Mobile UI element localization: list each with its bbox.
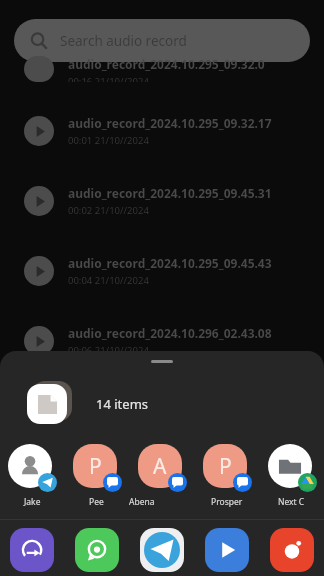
button[interactable]: audio_record_2024.10.296_02.43.08 — [0, 306, 324, 376]
button[interactable]: WhatsApp — [64, 520, 129, 576]
staticText: audio_record_2024.10.295_09.45.43 — [68, 255, 272, 271]
staticText: A — [153, 452, 167, 481]
staticText: Pee — [89, 496, 104, 508]
button[interactable]: 14 items — [0, 369, 324, 439]
staticText: audio_record_2024.10.295_09.32.0 — [68, 56, 265, 72]
staticText: audio_record_2024.10.296_02.43.08 — [68, 325, 272, 341]
button[interactable]: Search audio record — [14, 19, 310, 62]
button[interactable]: audio_record_2024.10.295_09.45.43 — [0, 236, 324, 306]
staticText: Abena Queenstar — [129, 496, 194, 508]
button[interactable]: P — [64, 439, 129, 519]
button[interactable]: Next C — [259, 439, 324, 519]
staticText: 00:16 21/10//2024 — [68, 75, 149, 82]
button[interactable]: P — [194, 439, 259, 519]
button[interactable]: Nearby Share — [0, 520, 64, 576]
button[interactable]: Jake — [0, 439, 64, 519]
button[interactable]: Reddit — [259, 520, 324, 576]
button[interactable]: A — [129, 439, 194, 519]
button[interactable]: Telegram — [129, 520, 194, 576]
staticText: 14 items — [96, 395, 149, 413]
staticText: Prosper — [211, 496, 243, 508]
staticText: audio_record_2024.10.295_09.32.17 — [68, 115, 272, 131]
staticText: audio_record_2024.10.295_09.45.31 — [68, 185, 272, 201]
staticText: 00:01 21/10//2024 — [68, 134, 149, 147]
staticText: 00:04 21/10//2024 — [68, 274, 149, 287]
staticText: P — [219, 452, 232, 481]
button[interactable]: audio_record_2024.10.295_09.32.17 — [0, 96, 324, 166]
button[interactable]: Play — [194, 520, 259, 576]
button[interactable]: audio_record_2024.10.295_09.45.31 — [0, 166, 324, 236]
staticText: 00:02 21/10//2024 — [68, 204, 149, 217]
staticText: P — [89, 452, 102, 481]
staticText: Next C — [278, 496, 305, 508]
button[interactable]: audio_record_2024.10.295_09.32.0 — [0, 70, 324, 96]
staticText: Search audio record — [60, 32, 187, 50]
staticText: Jake — [24, 496, 41, 508]
staticText: 00:06 21/10//2024 — [68, 344, 149, 357]
